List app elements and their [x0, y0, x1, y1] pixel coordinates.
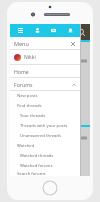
button[interactable]: Account [30, 24, 44, 37]
button[interactable]: Nikki [10, 50, 80, 64]
button[interactable]: Search [77, 28, 86, 37]
staticText: Watched forums [20, 163, 53, 169]
button[interactable]: Unanswered threads [10, 131, 80, 141]
staticText: Watched [17, 143, 35, 149]
button[interactable]: Watched [10, 141, 80, 151]
button[interactable]: Alerts [63, 24, 77, 37]
staticText: Find threads [17, 103, 42, 109]
button[interactable]: Menu [13, 24, 27, 37]
staticText: New posts [17, 93, 38, 99]
staticText: Home [14, 68, 29, 75]
button[interactable]: Watched forums [10, 161, 80, 171]
button[interactable]: Threads with your posts [10, 121, 80, 131]
button[interactable]: Forums [10, 78, 80, 91]
button[interactable]: Inbox [46, 24, 60, 37]
button[interactable]: Close menu [69, 40, 77, 48]
button[interactable]: New posts [10, 91, 80, 101]
button[interactable]: Your threads [10, 111, 80, 121]
staticText: Menu [14, 40, 29, 47]
staticText: Watched threads [20, 153, 54, 159]
button[interactable]: Watched threads [10, 151, 80, 161]
button[interactable]: Search forums [10, 171, 80, 176]
button[interactable]: Home [10, 65, 80, 78]
button[interactable]: Find threads [10, 101, 80, 111]
staticText: Nikki [24, 54, 36, 61]
staticText: Forums [14, 81, 33, 88]
staticText: Search forums [17, 171, 46, 176]
staticText: Threads with your posts [20, 123, 68, 129]
staticText: Your threads [20, 113, 46, 119]
staticText: Unanswered threads [20, 133, 61, 139]
